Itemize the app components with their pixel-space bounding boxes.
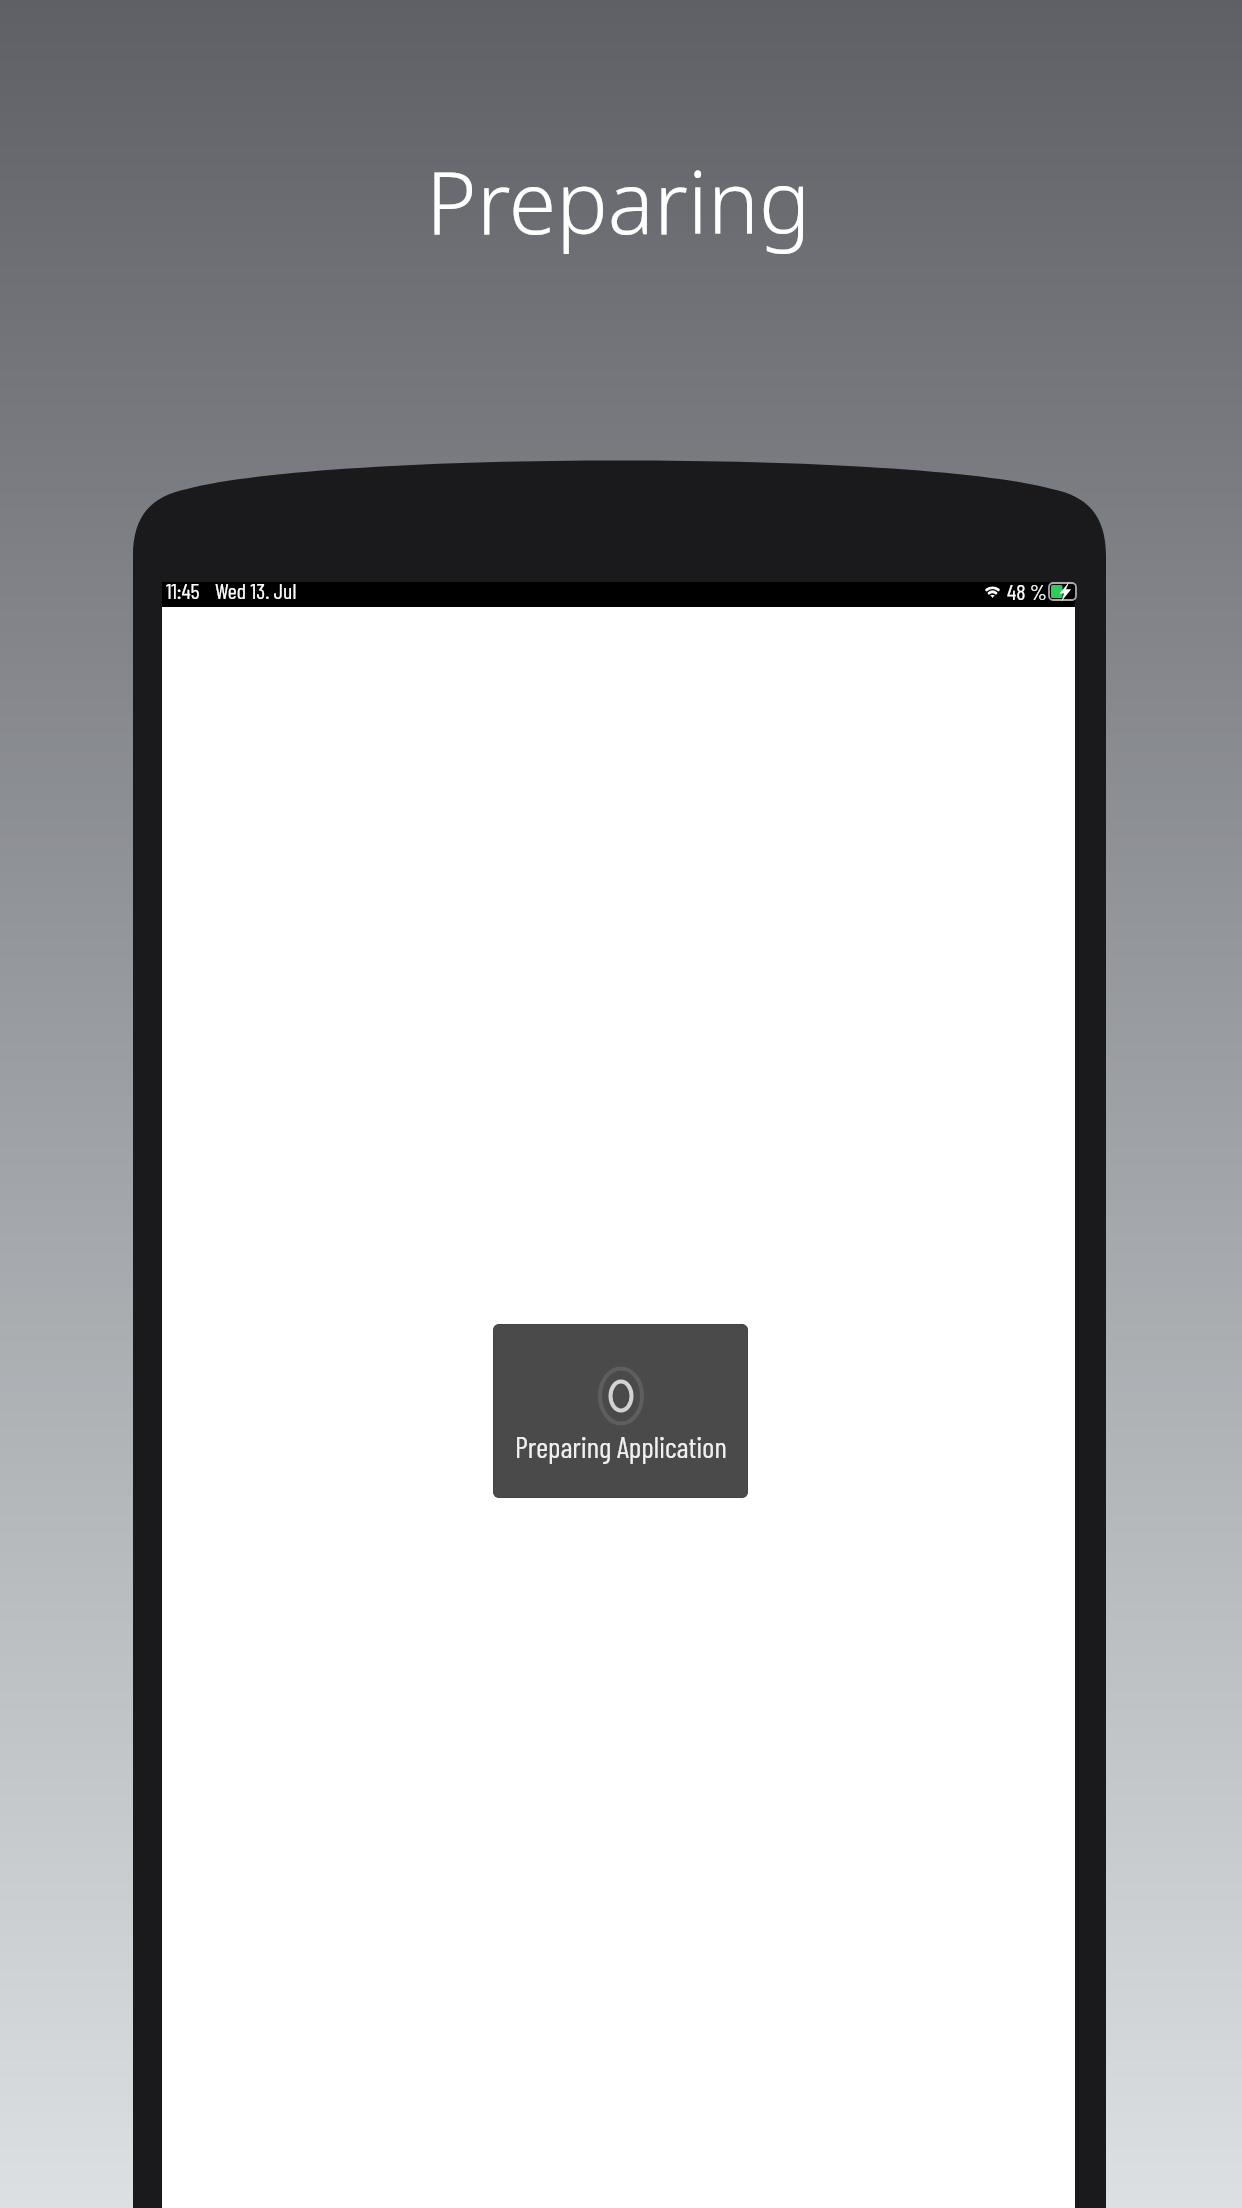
- button[interactable]: Wi-Fi connected: [984, 578, 1077, 604]
- staticText: Wed 13. Jul: [215, 577, 297, 603]
- staticText: Preparing Application: [515, 1429, 727, 1464]
- staticText: 48 %: [1007, 578, 1047, 604]
- staticText: Preparing: [426, 142, 811, 259]
- staticText: 11:45: [166, 577, 200, 603]
- other: Loading: [597, 1365, 645, 1427]
- other: Wi-Fi connected: [984, 583, 1001, 599]
- other: Battery 48 percent, charging: [1048, 582, 1077, 601]
- button[interactable]: 11:45: [166, 577, 297, 603]
- button[interactable]: Loading: [493, 1324, 748, 1498]
